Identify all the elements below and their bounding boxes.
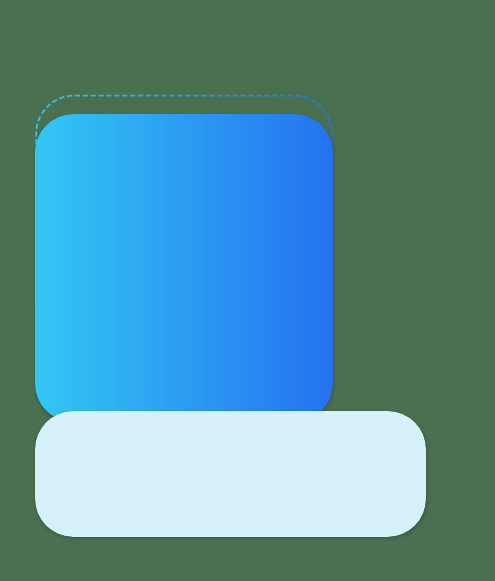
button[interactable]: Details panel: [35, 411, 426, 537]
button[interactable]: Expanding gradient card: [35, 114, 333, 422]
